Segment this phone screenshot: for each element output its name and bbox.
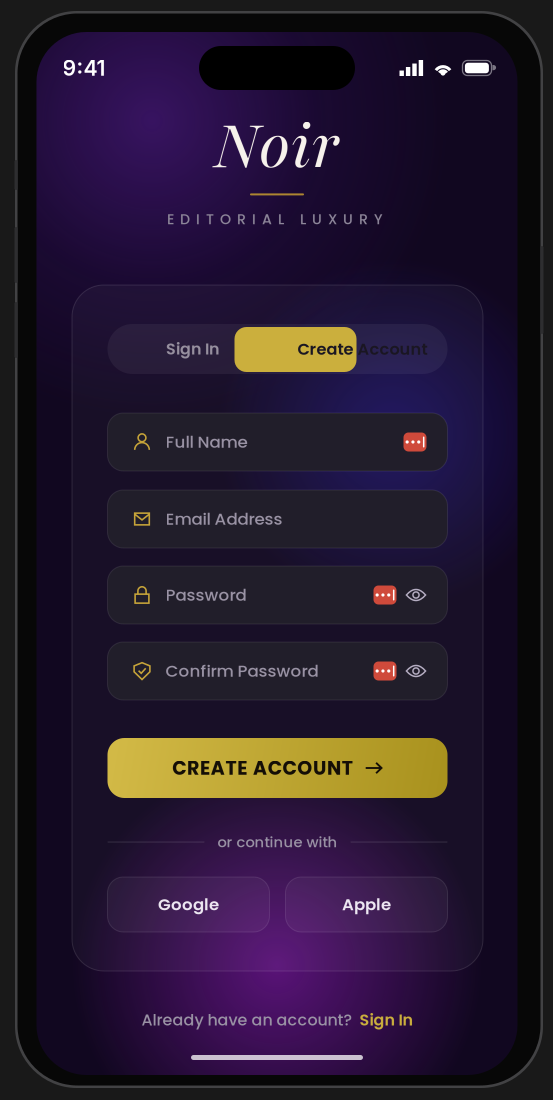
staticText: EDITORIAL LUXURY (167, 209, 383, 229)
staticText: Already have an account? (141, 1009, 352, 1031)
staticText: Create Account (297, 338, 427, 360)
staticText: Confirm Password (165, 659, 318, 683)
staticText: Apple (342, 893, 391, 916)
button[interactable]: Autofill password (373, 585, 396, 604)
staticText: Noir (213, 103, 340, 189)
button[interactable]: Confirm Password (107, 642, 447, 700)
button[interactable]: Apple (285, 877, 447, 932)
staticText: Google (158, 893, 219, 916)
button[interactable]: Show password (405, 585, 426, 604)
button[interactable]: CREATE ACCOUNT (107, 738, 447, 798)
staticText: Password (165, 583, 246, 607)
button[interactable]: Create Account (277, 324, 447, 374)
button[interactable]: Password (107, 566, 447, 624)
staticText: Email Address (165, 507, 282, 531)
staticText: Full Name (165, 430, 247, 454)
staticText: Sign In (359, 1009, 412, 1031)
button[interactable]: Email Address (107, 490, 447, 548)
button[interactable]: Google (107, 877, 269, 932)
button[interactable]: Show password (405, 661, 426, 680)
staticText: 9:41 (62, 55, 105, 81)
button[interactable]: Autofill password (373, 661, 396, 680)
staticText: Sign In (166, 338, 219, 360)
staticText: CREATE ACCOUNT (172, 755, 353, 781)
button[interactable]: Sign In (107, 324, 277, 374)
button[interactable]: Autofill password (403, 432, 426, 451)
button[interactable]: Already have an account? (141, 1005, 412, 1035)
button[interactable]: Full Name (107, 413, 447, 471)
staticText: or continue with (217, 832, 337, 852)
